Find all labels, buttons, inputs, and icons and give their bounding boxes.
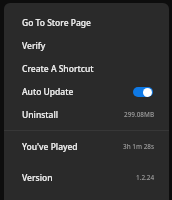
staticText: 1.2.24 [136, 173, 155, 182]
button[interactable]: You've Played [4, 131, 169, 162]
button[interactable]: Verify [4, 34, 169, 57]
staticText: Auto Update [22, 86, 74, 98]
staticText: You've Played [22, 141, 78, 153]
staticText: 299.08MB [124, 110, 155, 119]
other: Auto Update [133, 87, 153, 97]
staticText: 3h 1m 28s [123, 142, 155, 151]
staticText: Uninstall [22, 109, 59, 121]
staticText: Version [22, 172, 53, 184]
button[interactable]: Version [4, 162, 169, 193]
button[interactable]: Go To Store Page [4, 11, 169, 34]
button[interactable]: Uninstall [4, 103, 169, 126]
staticText: Go To Store Page [22, 17, 92, 29]
button[interactable]: Auto Update [4, 80, 169, 103]
button[interactable]: Create A Shortcut [4, 57, 169, 80]
staticText: Create A Shortcut [22, 63, 94, 75]
staticText: Verify [22, 40, 46, 52]
